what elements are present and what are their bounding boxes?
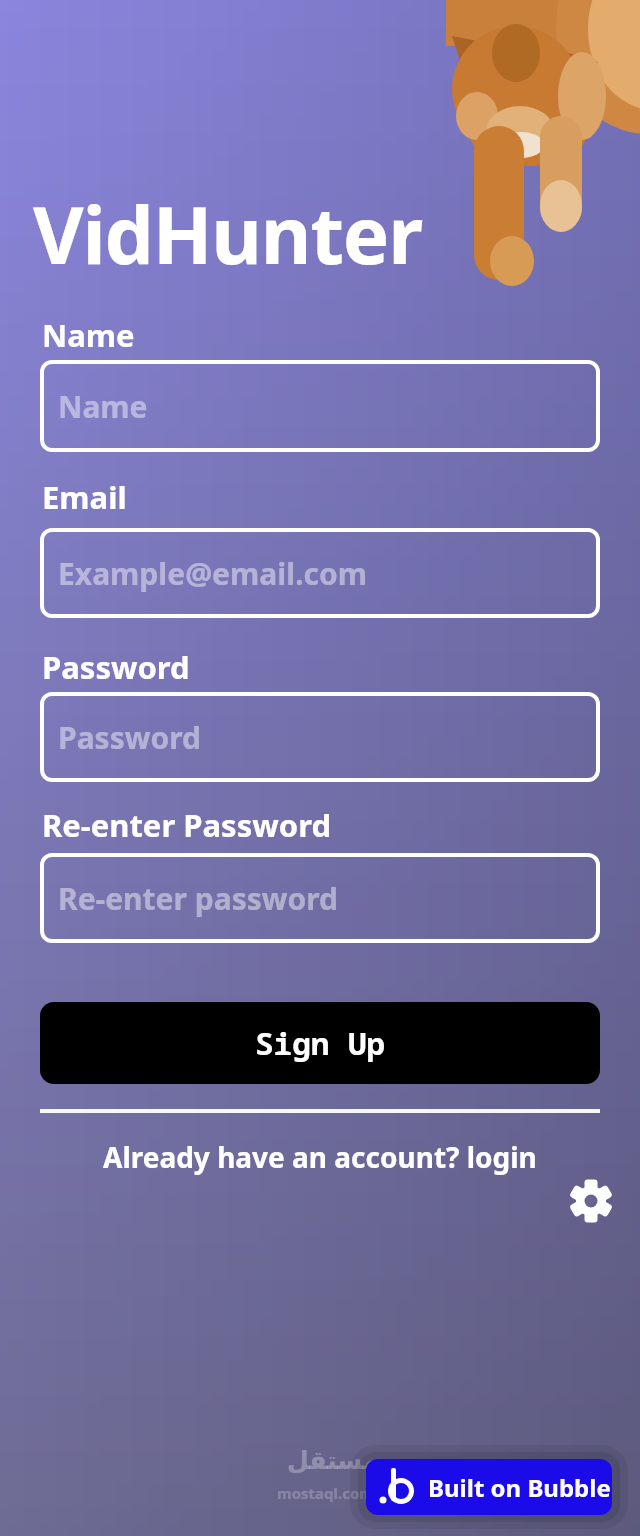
staticText: Password [58,717,201,758]
button[interactable]: Re-enter password [40,853,600,943]
staticText: مستقل [287,1446,379,1475]
button[interactable]: Name [40,360,600,452]
staticText: Re-enter password [58,878,338,919]
staticText: Password [42,646,190,688]
button[interactable]: Example@email.com [40,528,600,618]
staticText: Built on Bubble [428,1471,611,1504]
button[interactable]: Sign Up [40,1002,600,1084]
button[interactable]: Password [40,692,600,782]
staticText: VidHunter [33,181,422,287]
staticText: Name [58,386,148,427]
staticText: Re-enter Password [42,804,331,846]
button[interactable]: Already have an account? login [103,1138,537,1176]
button[interactable] [569,1179,613,1223]
staticText: mostaql.com [277,1483,374,1503]
button[interactable]: Built on Bubble [366,1459,612,1515]
staticText: Email [42,476,127,518]
staticText: Name [42,314,135,356]
staticText: Sign Up [255,1022,386,1064]
staticText: Example@email.com [58,553,368,594]
